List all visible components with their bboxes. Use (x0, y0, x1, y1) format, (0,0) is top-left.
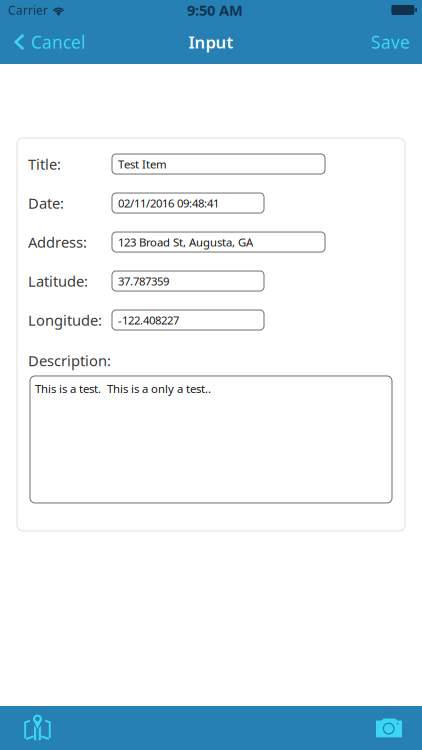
staticText: Carrier (8, 2, 48, 18)
button[interactable]: Cancel (0, 20, 93, 64)
staticText: 02/11/2016 09:48:41 (118, 195, 219, 211)
staticText: -122.408227 (118, 312, 179, 328)
button[interactable]: Camera (364, 706, 422, 750)
staticText: 37.787359 (118, 273, 169, 289)
staticText: Title: (28, 154, 61, 174)
staticText: Date: (28, 193, 64, 213)
staticText: Longitude: (28, 310, 102, 330)
staticText: 123 Broad St, Augusta, GA (118, 234, 253, 250)
button[interactable]: Map (0, 706, 63, 750)
staticText: Input (188, 31, 233, 53)
staticText: Test Item (118, 156, 167, 172)
staticText: Cancel (31, 30, 85, 54)
staticText: Latitude: (28, 271, 88, 291)
button[interactable]: Save (359, 20, 422, 64)
staticText: Address: (28, 232, 87, 252)
staticText: 9:50 AM (187, 0, 243, 20)
staticText: This is a test. This is a only a test.. (35, 381, 211, 396)
staticText: Description: (28, 350, 111, 370)
staticText: Save (371, 30, 410, 54)
